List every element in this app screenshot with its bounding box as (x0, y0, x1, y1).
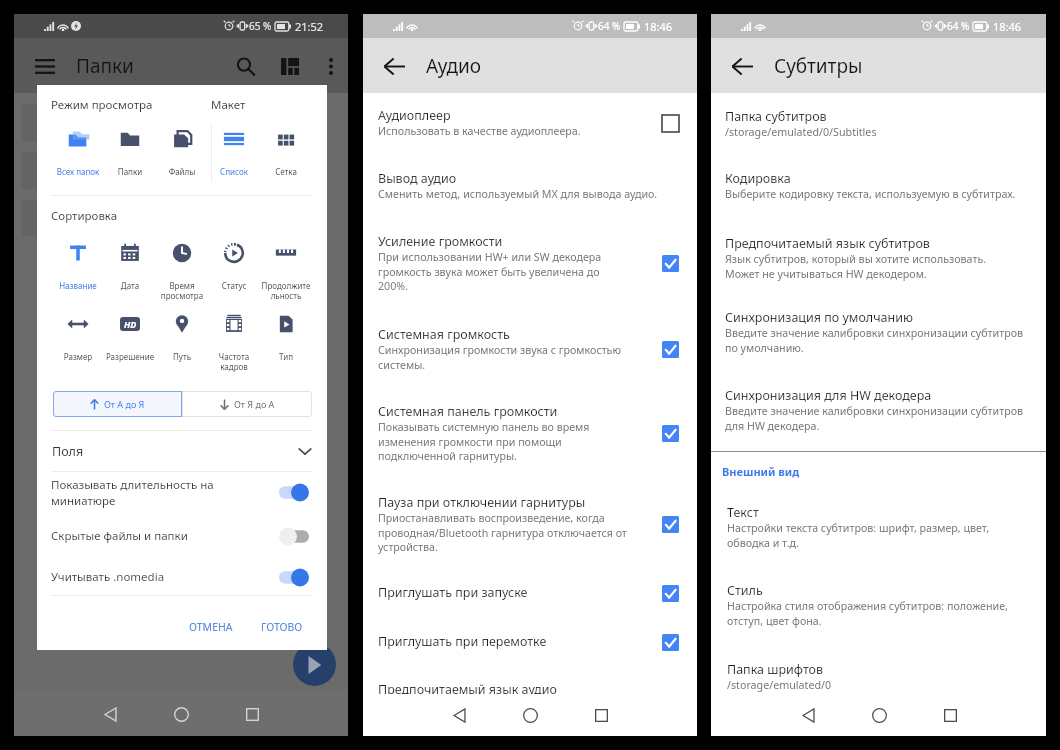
staticText: Сетка (260, 166, 312, 177)
button[interactable]: Back (723, 47, 761, 85)
button[interactable]: Всех папок (52, 127, 104, 177)
staticText: Настройки текста субтитров: шрифт, разме… (727, 521, 990, 550)
staticText: Настройка стиля отображения субтитров: п… (727, 599, 1008, 628)
staticText: 21:52 (295, 19, 324, 34)
staticText: Предпочитаемый язык аудио (378, 681, 557, 698)
button[interactable]: Файлы (156, 127, 208, 177)
button[interactable]: Тип (260, 312, 312, 362)
staticText: Предпочитаемый язык субтитров (725, 235, 930, 252)
button[interactable]: Пауза при отключении гарнитуры (363, 490, 697, 554)
staticText: Частота кадров (208, 351, 260, 372)
button[interactable]: Recents (230, 692, 274, 736)
staticText: Приглушать при перемотке (378, 633, 547, 650)
staticText: Разрешение (104, 351, 156, 362)
button[interactable]: Menu (26, 47, 64, 85)
staticText: HD (124, 318, 137, 330)
button[interactable]: Приглушать при перемотке (363, 629, 697, 650)
button[interactable]: Home (857, 694, 901, 736)
button[interactable]: ОТМЕНА (177, 613, 245, 641)
staticText: От Я до А (234, 398, 275, 410)
staticText: Введите значение калибровки синхронизаци… (725, 326, 1024, 355)
staticText: Использовать в качестве аудиоплеера. (378, 124, 581, 139)
staticText: Размер (52, 351, 104, 362)
staticText: Макет (211, 97, 246, 113)
staticText: Системная громкость (378, 326, 510, 343)
button[interactable]: Текст (711, 500, 1046, 550)
button[interactable]: Папка шрифтов (711, 657, 1046, 693)
button[interactable]: Кодировка (711, 166, 1046, 202)
button[interactable]: Back (437, 694, 481, 736)
button[interactable]: Синхронизация по умолчанию (711, 305, 1046, 355)
staticText: Название (52, 280, 104, 291)
staticText: От А до Я (104, 398, 145, 410)
staticText: Папка субтитров (725, 108, 827, 125)
staticText: Введите значение калибровки синхронизаци… (725, 404, 1024, 433)
staticText: Сортировка (51, 208, 118, 224)
button[interactable]: Путь (156, 312, 208, 362)
button[interactable]: Продолжите льность (260, 241, 312, 301)
button[interactable]: HD (104, 312, 156, 362)
button[interactable]: Системная громкость (363, 322, 697, 372)
staticText: /storage/emulated/0/Subtitles (725, 125, 877, 140)
button[interactable]: Дата (104, 241, 156, 291)
button[interactable]: Back (375, 47, 413, 85)
staticText: Выберите кодировку текста, используемую … (725, 187, 1016, 202)
staticText: Продолжите льность (260, 280, 312, 301)
button[interactable]: Home (159, 692, 203, 736)
staticText: Скрытые файлы и папки (51, 528, 188, 544)
staticText: 64 % (947, 19, 970, 33)
button[interactable]: Back (786, 694, 830, 736)
staticText: Файлы (156, 166, 208, 177)
staticText: Аудио (426, 53, 482, 79)
button[interactable]: Play (293, 643, 336, 686)
staticText: Дата (104, 280, 156, 291)
button[interactable]: More options (314, 49, 348, 83)
button[interactable]: Вывод аудио (363, 166, 697, 202)
button[interactable]: От А до Я (53, 391, 182, 417)
staticText: 18:46 (644, 19, 673, 34)
button[interactable]: Синхронизация для HW декодера (711, 383, 1046, 433)
button[interactable]: Сетка (260, 127, 312, 177)
staticText: Приостанавливать воспроизведение, когда … (378, 511, 627, 554)
staticText: Папки (104, 166, 156, 177)
button[interactable]: Search (226, 47, 264, 85)
button[interactable]: Системная панель громкости (363, 399, 697, 463)
button[interactable]: Предпочитаемый язык субтитров (711, 231, 1046, 281)
button[interactable]: От Я до А (182, 391, 312, 417)
staticText: Режим просмотра (51, 97, 153, 113)
button[interactable]: Поля (37, 431, 327, 471)
staticText: Тип (260, 351, 312, 362)
staticText: 64 % (598, 19, 621, 33)
button[interactable]: Время просмотра (156, 241, 208, 301)
button[interactable]: Частота кадров (208, 312, 260, 372)
button[interactable]: Название (52, 241, 104, 291)
button[interactable]: ГОТОВО (245, 613, 327, 641)
staticText: Текст (727, 504, 759, 521)
button[interactable]: Показывать длительность на миниатюре (37, 468, 327, 516)
button[interactable]: Back (88, 692, 132, 736)
staticText: ОТМЕНА (189, 620, 233, 634)
staticText: 65 % (249, 19, 272, 33)
button[interactable]: Предпочитаемый язык аудио (363, 677, 697, 698)
staticText: Системная панель громкости (378, 403, 558, 420)
button[interactable]: Стиль (711, 578, 1046, 628)
button[interactable]: Приглушать при запуске (363, 580, 697, 601)
button[interactable]: Recents (928, 694, 972, 736)
staticText: Приглушать при запуске (378, 584, 528, 601)
button[interactable]: Recents (579, 694, 623, 736)
button[interactable]: Аудиоплеер (363, 103, 697, 139)
staticText: Кодировка (725, 170, 791, 187)
staticText: Показывать системную панель во время изм… (378, 420, 590, 463)
button[interactable]: Список (208, 127, 260, 177)
button[interactable]: Папка субтитров (711, 104, 1046, 140)
button[interactable]: Статус (208, 241, 260, 291)
button[interactable]: Скрытые файлы и папки (37, 516, 327, 556)
button[interactable]: Усиление громкости (363, 229, 697, 293)
staticText: Пауза при отключении гарнитуры (378, 494, 586, 511)
button[interactable]: Layout (271, 47, 309, 85)
button[interactable]: Home (508, 694, 552, 736)
button[interactable]: Учитывать .nomedia (37, 557, 327, 597)
button[interactable]: Размер (52, 312, 104, 362)
button[interactable]: Папки (104, 127, 156, 177)
staticText: Вывод аудио (378, 170, 457, 187)
